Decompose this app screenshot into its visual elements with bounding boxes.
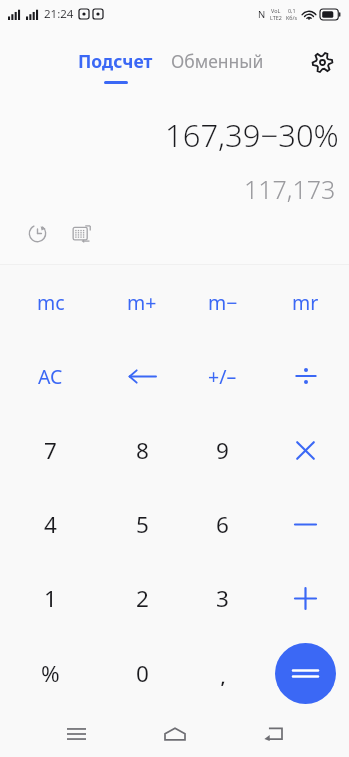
staticText: VoL [271,7,281,14]
button[interactable]: 7 [0,413,101,487]
staticText: m+ [127,289,157,316]
button[interactable]: m− [183,265,262,339]
button[interactable]: 9 [183,413,262,487]
button[interactable]: Unit converter [66,218,96,248]
staticText: , [220,660,227,686]
button[interactable]: 4 [0,487,101,561]
staticText: m− [208,289,238,316]
button[interactable]: Backspace [101,339,183,413]
button[interactable]: 0 [101,636,183,710]
button[interactable]: Обменный [169,49,266,73]
button[interactable]: AC [0,339,101,413]
staticText: 1 [44,583,57,614]
button[interactable]: History [22,218,52,248]
staticText: mc [37,289,65,316]
button[interactable]: Back [250,711,296,757]
staticText: 9 [216,435,229,466]
button[interactable]: Equals [262,636,349,710]
staticText: 7 [44,435,57,466]
staticText: +/– [208,363,237,390]
button[interactable]: 6 [183,487,262,561]
staticText: 2 [136,583,149,614]
staticText: N [258,8,266,21]
staticText: AC [38,363,63,390]
button[interactable]: Minus [262,487,349,561]
button[interactable]: mr [262,265,349,339]
staticText: 0 [136,658,149,689]
staticText: % [41,658,60,689]
button[interactable]: % [0,636,101,710]
button[interactable]: Recents [53,711,99,757]
button[interactable]: +/– [183,339,262,413]
button[interactable]: mc [0,265,101,339]
staticText: 8 [136,435,149,466]
button[interactable]: Plus [262,561,349,636]
button[interactable]: , [183,636,262,710]
button[interactable]: Settings [307,47,337,77]
button[interactable]: 3 [183,561,262,636]
button[interactable]: 2 [101,561,183,636]
staticText: 6 [216,509,229,540]
staticText: 5 [136,509,149,540]
staticText: 0,1 [288,7,296,14]
staticText: 21:24 [44,6,74,22]
staticText: Kб/s [286,14,298,21]
staticText: 4 [44,509,57,540]
staticText: 117,173 [244,172,336,206]
button[interactable]: 8 [101,413,183,487]
button[interactable]: m+ [101,265,183,339]
staticText: mr [292,289,319,316]
staticText: Подсчет [78,49,153,73]
staticText: Обменный [171,49,264,73]
button[interactable]: 5 [101,487,183,561]
staticText: 3 [216,583,229,614]
button[interactable]: Подсчет [76,49,155,84]
button[interactable]: Divide [262,339,349,413]
button[interactable]: 1 [0,561,101,636]
staticText: LTE2 [270,14,282,21]
button[interactable]: Home [152,711,198,757]
staticText: 167,39−30% [165,114,339,156]
button[interactable]: Multiply [262,413,349,487]
